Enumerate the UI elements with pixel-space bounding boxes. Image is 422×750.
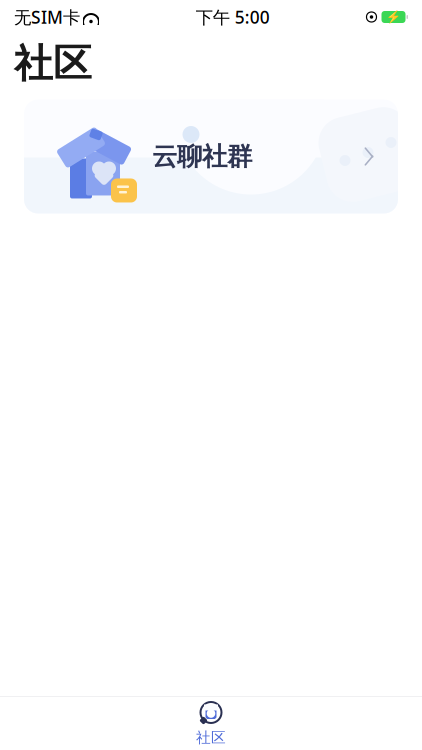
staticText: 下午 5:00 [196,5,270,28]
staticText: 云聊社群 [152,141,252,172]
staticText: 无SIM卡 [14,5,80,28]
staticText: 社区 [196,728,226,746]
button[interactable]: 社区 [156,697,266,749]
button[interactable]: 云聊社群 [24,99,398,213]
staticText: 社区 [14,40,92,87]
staticText: ⚡ [386,10,401,24]
